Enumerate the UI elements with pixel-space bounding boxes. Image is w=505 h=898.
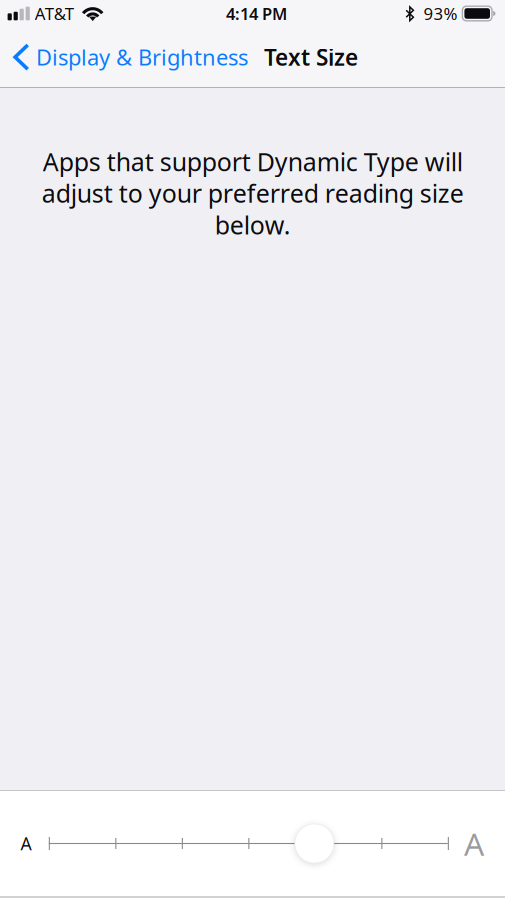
staticText: A (464, 822, 484, 864)
button[interactable]: Display & Brightness (0, 27, 264, 87)
staticText: AT&T (35, 2, 74, 25)
staticText: A (20, 832, 31, 855)
staticText: Text Size (264, 42, 358, 72)
staticText: Display & Brightness (36, 42, 248, 71)
staticText: 4:14 PM (226, 2, 287, 24)
staticText: Apps that support Dynamic Type will adju… (41, 145, 463, 241)
staticText: 93% (423, 2, 457, 25)
